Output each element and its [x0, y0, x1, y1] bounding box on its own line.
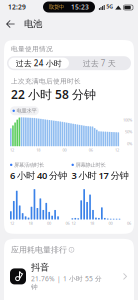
staticText: 18: [28, 220, 32, 226]
staticText: 22 小时 58 分钟: [11, 86, 96, 102]
button[interactable]: 返回: [5, 15, 19, 33]
staticText: 100%: [123, 117, 132, 123]
staticText: 5G: [106, 3, 113, 10]
staticText: 取货中: [49, 4, 64, 10]
staticText: 屏幕静止时长: [75, 162, 105, 168]
staticText: 00: [62, 147, 66, 153]
button[interactable]: 过去 7 天: [69, 58, 129, 69]
staticText: 12: [10, 147, 14, 153]
staticText: 21.76% | 1 小时 55 分钟: [31, 274, 102, 291]
staticText: 电量使用情况: [11, 45, 53, 53]
staticText: 06: [89, 147, 93, 153]
staticText: 上次充满电后使用时长: [11, 77, 81, 85]
staticText: 12:29: [8, 3, 26, 11]
staticText: 过去 7 天: [83, 58, 116, 68]
staticText: 15:23: [71, 3, 89, 11]
staticText: 过去 24 小时: [16, 58, 62, 68]
staticText: 50%: [125, 129, 132, 134]
staticText: 18: [90, 220, 94, 226]
staticText: 0%: [127, 141, 132, 146]
staticText: 6 小时 40 分钟: [10, 169, 67, 181]
staticText: 12: [115, 147, 119, 153]
staticText: 3 小时 17 分钟: [71, 169, 128, 181]
staticText: 12: [71, 220, 75, 226]
staticText: 18: [36, 147, 40, 153]
staticText: 应用耗电量排行: [11, 245, 67, 255]
staticText: 06: [65, 220, 69, 226]
button[interactable]: 抖音: [4, 258, 134, 295]
staticText: 屏幕活动时长: [14, 162, 44, 168]
staticText: 电量水平: [16, 107, 36, 114]
staticText: 00: [108, 220, 112, 226]
button[interactable]: 过去 24 小时: [8, 58, 69, 69]
staticText: 00: [47, 220, 51, 226]
staticText: i: [71, 247, 72, 252]
staticText: 12: [10, 220, 14, 226]
staticText: 抖音: [31, 262, 49, 273]
staticText: 电池: [24, 18, 42, 30]
staticText: 06: [127, 220, 131, 226]
